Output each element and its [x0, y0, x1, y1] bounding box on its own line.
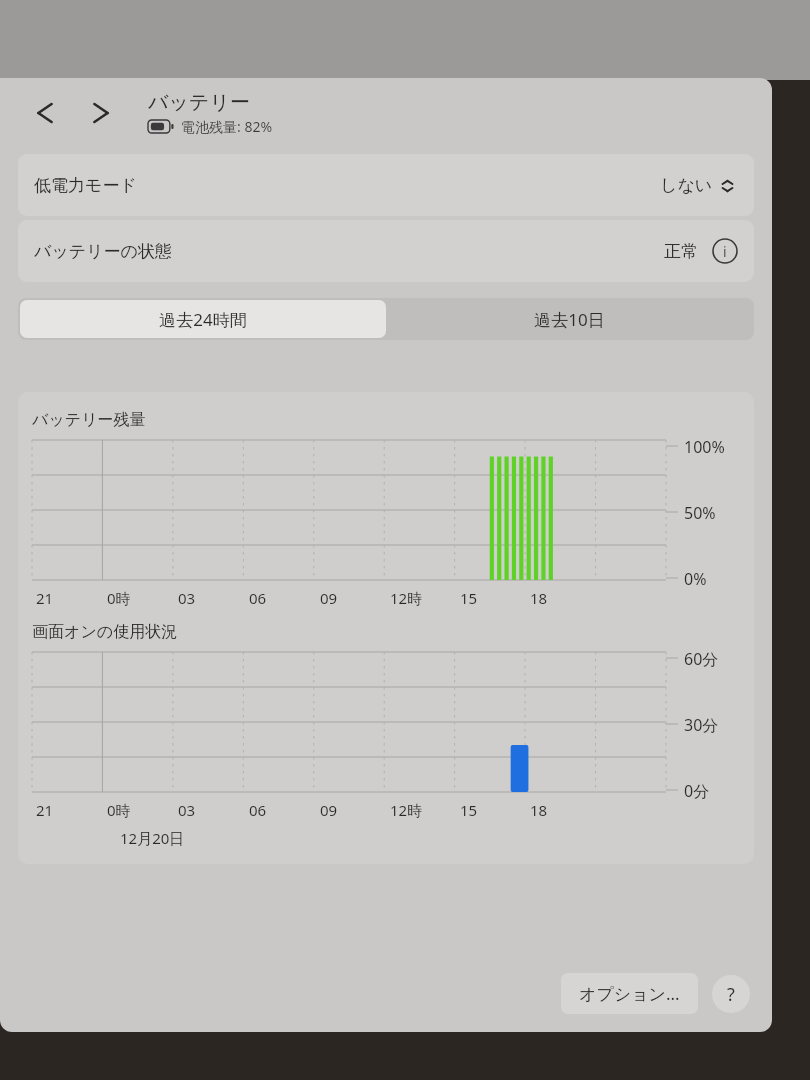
button[interactable]: しない [656, 171, 738, 200]
button[interactable]: 過去24時間 [20, 300, 386, 338]
staticText: 0時 [107, 588, 131, 608]
button[interactable]: 低電力モード [18, 154, 754, 216]
staticText: バッテリー [148, 90, 250, 115]
staticText: 60分 [684, 648, 719, 668]
staticText: 0分 [684, 780, 710, 800]
staticText: バッテリーの状態 [34, 241, 172, 262]
staticText: 21 [36, 800, 54, 820]
staticText: 12月20日 [120, 828, 185, 848]
button[interactable]: ヘルプ [712, 975, 750, 1013]
staticText: 30分 [684, 714, 719, 734]
staticText: 15 [460, 800, 478, 820]
staticText: 12時 [390, 588, 423, 608]
staticText: 電池残量: 82% [181, 117, 273, 136]
staticText: 06 [249, 800, 267, 820]
staticText: 03 [178, 800, 196, 820]
staticText: 低電力モード [34, 175, 137, 196]
staticText: 画面オンの使用状況 [32, 622, 178, 642]
button[interactable]: Back [30, 98, 60, 128]
staticText: i [723, 242, 727, 261]
staticText: 06 [249, 588, 267, 608]
staticText: 18 [530, 800, 548, 820]
staticText: 100% [684, 436, 725, 456]
staticText: 過去24時間 [159, 308, 247, 331]
staticText: 正常 [664, 241, 698, 262]
staticText: 過去10日 [534, 308, 605, 331]
button[interactable]: バッテリーの状態の詳細 [712, 238, 738, 264]
button[interactable]: Forward [86, 98, 116, 128]
staticText: 0時 [107, 800, 131, 820]
staticText: 50% [684, 502, 716, 522]
staticText: 03 [178, 588, 196, 608]
staticText: 0% [684, 568, 707, 588]
staticText: 12時 [390, 800, 423, 820]
staticText: 18 [530, 588, 548, 608]
staticText: オプション... [579, 982, 680, 1005]
staticText: ? [727, 982, 735, 1007]
staticText: 21 [36, 588, 54, 608]
staticText: 09 [320, 588, 338, 608]
button[interactable]: バッテリーの状態 [18, 220, 754, 282]
button[interactable]: 過去10日 [386, 300, 752, 338]
staticText: しない [660, 175, 713, 196]
staticText: 09 [320, 800, 338, 820]
staticText: バッテリー残量 [32, 410, 146, 430]
staticText: 15 [460, 588, 478, 608]
button[interactable]: オプション... [561, 973, 698, 1014]
